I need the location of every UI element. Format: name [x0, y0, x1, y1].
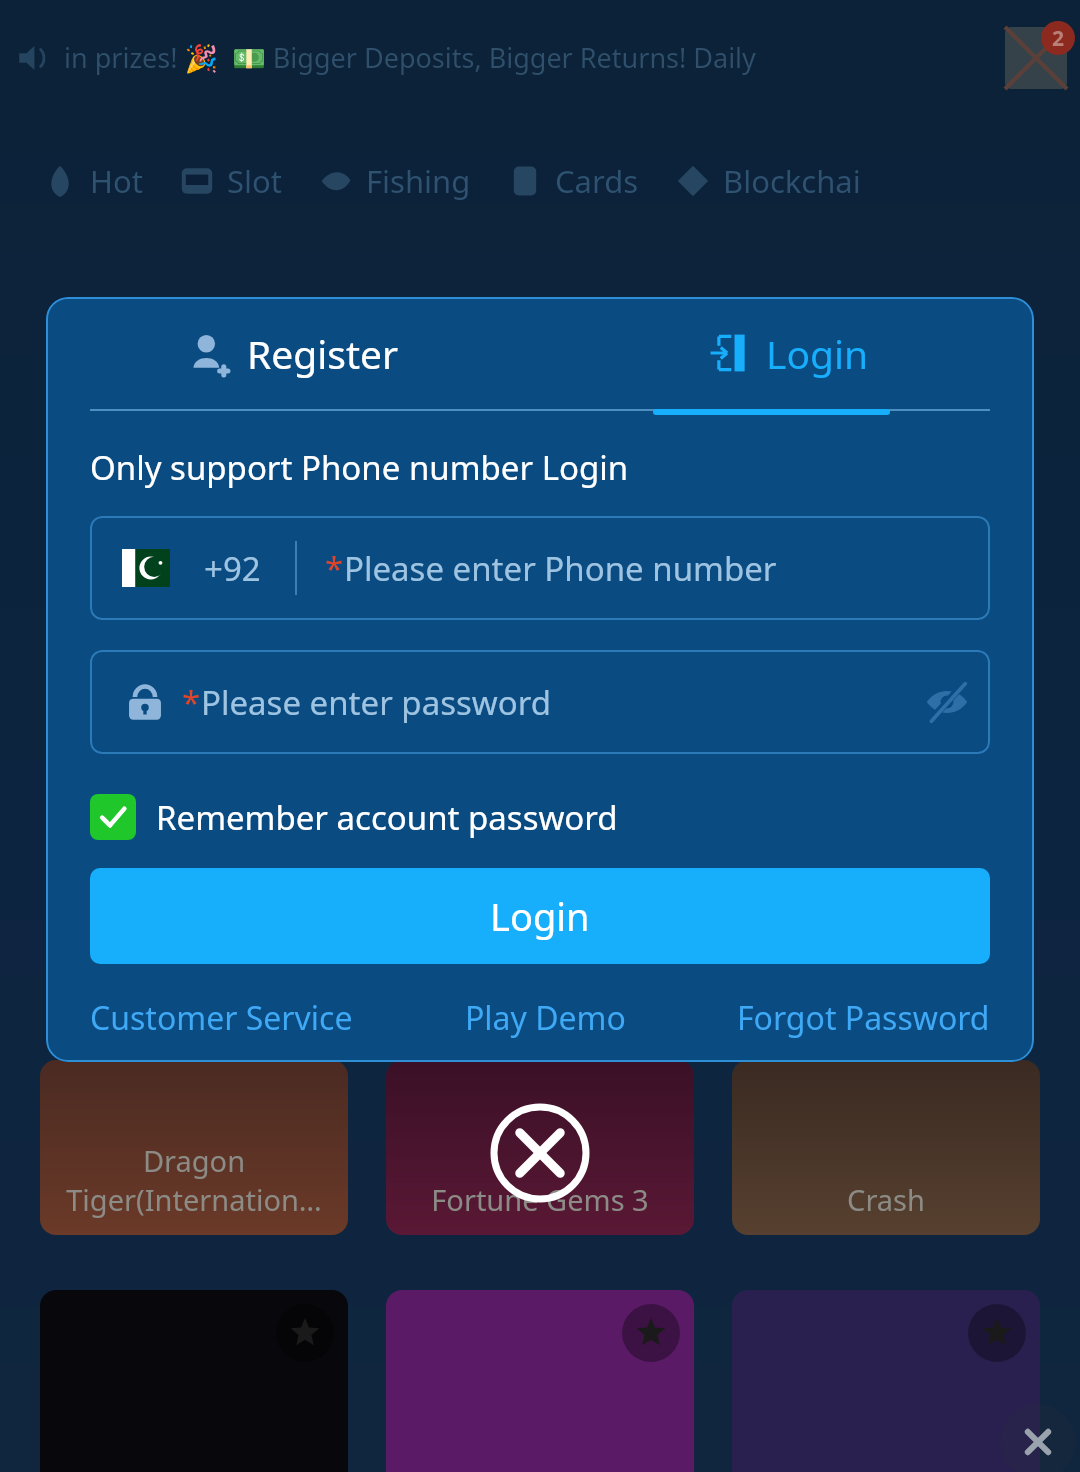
staticText: +92 — [204, 546, 261, 591]
staticText: Dragon Tiger(Internation… — [66, 1141, 322, 1219]
button[interactable]: Hot — [40, 160, 177, 202]
staticText: Please enter Phone number — [344, 546, 777, 591]
button[interactable]: Dismiss — [1000, 1404, 1076, 1472]
staticText: * — [182, 680, 201, 725]
button[interactable]: Cards — [505, 160, 673, 202]
button[interactable]: Register — [46, 297, 540, 409]
staticText: Please enter password — [201, 680, 551, 725]
button[interactable]: Forgot Password — [737, 992, 990, 1044]
button[interactable]: Slot — [177, 160, 316, 202]
button[interactable]: * — [90, 650, 990, 754]
staticText: Remember account password — [156, 795, 618, 840]
staticText: Play Demo — [465, 996, 626, 1040]
button[interactable]: Login — [90, 868, 990, 964]
button[interactable]: Fishing — [316, 160, 505, 202]
staticText: Register — [247, 327, 399, 380]
staticText: Slot — [227, 160, 282, 202]
button[interactable]: Show password — [904, 659, 990, 745]
staticText: Blockchai — [723, 160, 861, 202]
staticText: Forgot Password — [737, 996, 990, 1040]
staticText: Cards — [555, 160, 639, 202]
button[interactable]: Fortune Gems 3 — [386, 1060, 694, 1235]
button[interactable]: Crash — [732, 1060, 1040, 1235]
staticText: * — [325, 546, 344, 591]
button[interactable]: Play Demo — [465, 992, 626, 1044]
button[interactable]: Customer Service — [90, 992, 353, 1044]
staticText: Crash — [847, 1180, 925, 1219]
button[interactable]: Login — [540, 297, 1034, 409]
staticText: in prizes! 🎉 💵 Bigger Deposits, Bigger R… — [64, 39, 1000, 76]
button[interactable]: Close — [490, 1103, 590, 1203]
button[interactable] — [386, 1290, 694, 1472]
button[interactable]: Remember account password — [90, 794, 618, 840]
staticText: Login — [766, 327, 869, 380]
button[interactable]: Blockchai — [673, 160, 895, 202]
staticText: Only support Phone number Login — [90, 445, 629, 490]
staticText: Login — [490, 890, 590, 942]
staticText: Fortune Gems 3 — [431, 1180, 649, 1219]
button[interactable]: +92 — [90, 516, 990, 620]
staticText: 2 — [1052, 24, 1065, 53]
button[interactable] — [732, 1290, 1040, 1472]
staticText: Hot — [90, 160, 143, 202]
staticText: Fishing — [366, 160, 471, 202]
button[interactable]: Dragon Tiger(Internation… — [40, 1060, 348, 1235]
staticText: Customer Service — [90, 996, 353, 1040]
